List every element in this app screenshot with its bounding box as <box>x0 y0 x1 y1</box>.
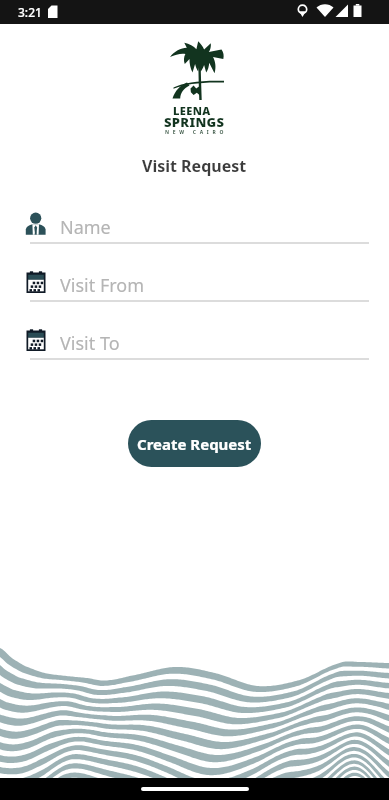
staticText: Visit From <box>60 273 145 298</box>
staticText: Create Request <box>137 434 252 454</box>
staticText: LEENA <box>173 103 211 118</box>
button[interactable]: Visit To <box>0 313 389 371</box>
staticText: 3:21 <box>18 4 42 20</box>
button[interactable]: Create Request <box>128 420 261 467</box>
staticText: N E W C A I R O <box>165 129 225 136</box>
button[interactable]: Visit From <box>0 255 389 313</box>
staticText: SPRINGS <box>164 113 225 131</box>
staticText: Visit To <box>60 331 120 356</box>
button[interactable]: Name <box>0 197 389 255</box>
staticText: Visit Request <box>142 155 247 177</box>
staticText: Name <box>60 215 111 240</box>
